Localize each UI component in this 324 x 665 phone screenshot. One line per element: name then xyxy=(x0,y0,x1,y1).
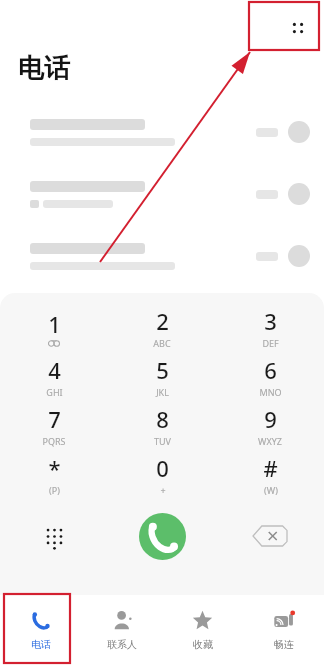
staticText: (W) xyxy=(264,484,278,496)
button[interactable]: Delete xyxy=(216,503,324,569)
staticText: JKL xyxy=(156,386,169,398)
staticText: MNO xyxy=(259,386,282,398)
button[interactable]: 电话 xyxy=(0,595,81,665)
staticText: ABC xyxy=(153,337,171,349)
button[interactable]: 7 xyxy=(0,401,108,450)
button[interactable]: More options xyxy=(272,8,324,48)
button[interactable]: 6 xyxy=(216,352,324,401)
staticText: PQRS xyxy=(42,435,66,447)
staticText: 收藏 xyxy=(193,638,213,651)
staticText: (P) xyxy=(49,484,60,496)
staticText: WXYZ xyxy=(258,435,282,447)
button[interactable]: Call xyxy=(139,513,186,560)
button[interactable] xyxy=(0,225,324,287)
staticText: 4 xyxy=(48,355,61,385)
staticText: 8 xyxy=(156,404,169,434)
staticText: 3 xyxy=(264,306,277,336)
button[interactable]: 收藏 xyxy=(162,595,243,665)
button[interactable]: 9 xyxy=(216,401,324,450)
staticText: 电话 xyxy=(18,52,70,85)
staticText: 9 xyxy=(264,404,277,434)
button[interactable]: 0 xyxy=(108,450,216,499)
staticText: 联系人 xyxy=(107,638,137,651)
staticText: 2 xyxy=(156,306,169,336)
staticText: TUV xyxy=(154,435,171,447)
button[interactable]: 畅连 xyxy=(243,595,324,665)
button[interactable]: * xyxy=(0,450,108,499)
staticText: 0 xyxy=(156,453,169,483)
staticText: GHI xyxy=(46,386,63,398)
button[interactable]: 4 xyxy=(0,352,108,401)
button[interactable]: 2 xyxy=(108,303,216,352)
button[interactable]: 联系人 xyxy=(81,595,162,665)
button[interactable]: Keypad xyxy=(0,503,108,569)
staticText: 电话 xyxy=(31,638,51,651)
button[interactable]: 3 xyxy=(216,303,324,352)
staticText: 7 xyxy=(48,404,61,434)
staticText: 1 xyxy=(48,309,61,339)
staticText: 6 xyxy=(264,355,277,385)
staticText: 畅连 xyxy=(274,638,294,651)
button[interactable] xyxy=(0,101,324,163)
button[interactable]: 1 xyxy=(0,303,108,352)
staticText: DEF xyxy=(262,337,279,349)
button[interactable]: # xyxy=(216,450,324,499)
staticText: + xyxy=(160,484,166,496)
staticText: * xyxy=(48,453,61,483)
button[interactable]: 8 xyxy=(108,401,216,450)
button[interactable] xyxy=(0,163,324,225)
staticText: # xyxy=(263,453,278,483)
button[interactable]: 5 xyxy=(108,352,216,401)
staticText: 5 xyxy=(156,355,169,385)
